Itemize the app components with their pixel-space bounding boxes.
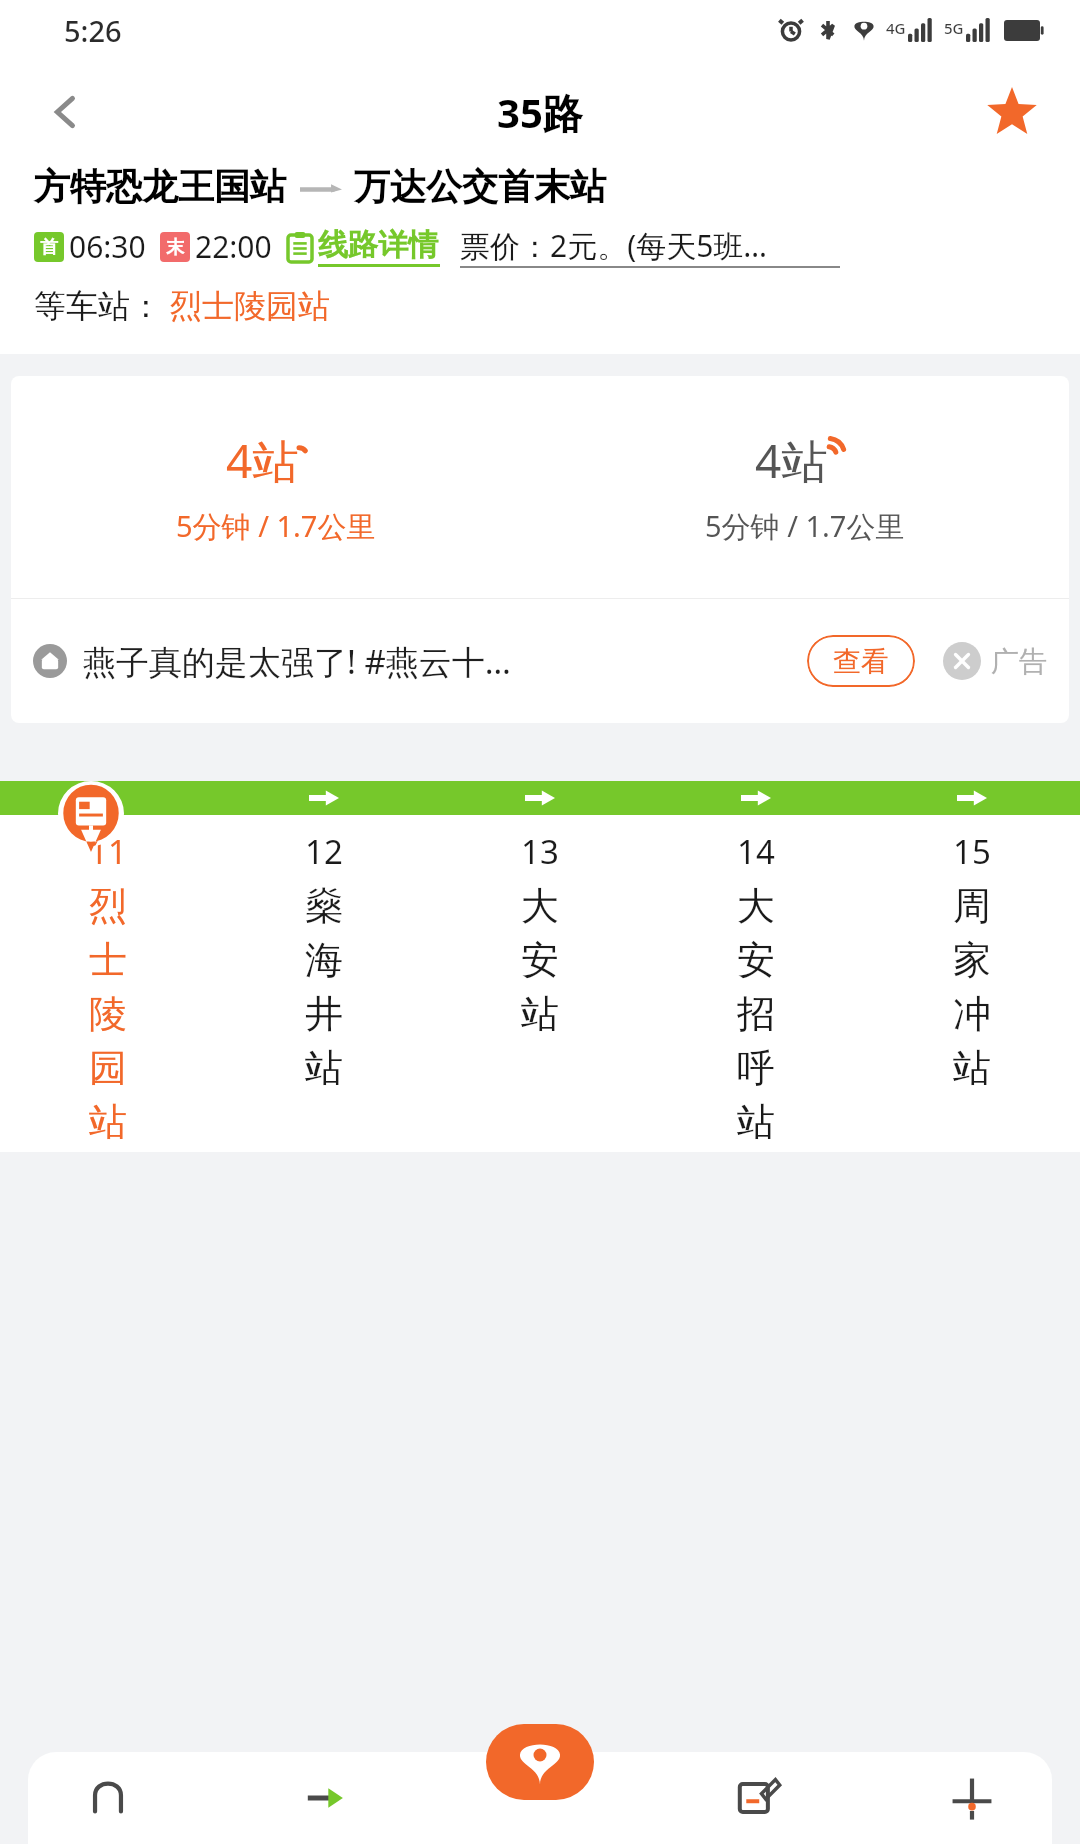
- staticText: 13: [521, 829, 559, 874]
- staticText: 4站: [226, 429, 299, 492]
- staticText: 广告: [991, 644, 1047, 679]
- button[interactable]: Nearby: [486, 1724, 594, 1800]
- button[interactable]: Transfer: [216, 1752, 432, 1844]
- button[interactable]: Favorite: [976, 76, 1048, 148]
- staticText: 井: [305, 990, 343, 1038]
- staticText: 11: [89, 829, 127, 874]
- button[interactable]: 等车站：: [34, 286, 330, 326]
- staticText: 方特恐龙王国站: [34, 164, 286, 209]
- staticText: 士: [89, 936, 127, 984]
- staticText: 首: [40, 236, 58, 259]
- staticText: 万达公交首末站: [354, 164, 606, 209]
- staticText: 大: [737, 882, 775, 930]
- staticText: 招: [737, 990, 775, 1038]
- staticText: 陵: [89, 990, 127, 1038]
- staticText: 12: [305, 829, 343, 874]
- staticText: 安: [737, 936, 775, 984]
- staticText: 家: [953, 936, 991, 984]
- staticText: 4G: [886, 18, 906, 38]
- staticText: 站: [737, 1098, 775, 1146]
- staticText: 4站: [755, 429, 828, 492]
- button[interactable]: 15: [864, 829, 1080, 1098]
- staticText: 5分钟 / 1.7公里: [705, 506, 905, 546]
- staticText: 5:26: [64, 11, 122, 50]
- staticText: 烈士陵园站: [170, 286, 330, 326]
- staticText: 5G: [944, 18, 964, 38]
- staticText: 5分钟 / 1.7公里: [176, 506, 376, 546]
- button[interactable]: Feedback: [648, 1752, 864, 1844]
- staticText: 35路: [497, 85, 583, 140]
- button[interactable]: Home: [0, 1752, 216, 1844]
- button[interactable]: Back: [28, 74, 104, 150]
- staticText: 烈: [89, 882, 127, 930]
- other: Bus position: [58, 781, 124, 855]
- staticText: 安: [521, 936, 559, 984]
- staticText: 站: [953, 1044, 991, 1092]
- button[interactable]: 13: [432, 829, 648, 1044]
- staticText: 站: [521, 990, 559, 1038]
- staticText: 大: [521, 882, 559, 930]
- button[interactable]: 11: [0, 829, 216, 1152]
- staticText: 海: [305, 936, 343, 984]
- button[interactable]: 4站: [11, 376, 540, 598]
- staticText: 周: [953, 882, 991, 930]
- staticText: 站: [305, 1044, 343, 1092]
- staticText: 燕子真的是太强了! #燕云十…: [83, 639, 511, 684]
- button[interactable]: 线路详情: [288, 226, 440, 267]
- staticText: 呼: [737, 1044, 775, 1092]
- staticText: 线路详情: [318, 226, 438, 264]
- button[interactable]: 4站: [540, 376, 1069, 598]
- staticText: 园: [89, 1044, 127, 1092]
- staticText: 14: [737, 829, 775, 874]
- staticText: 站: [89, 1098, 127, 1146]
- button[interactable]: 查看: [807, 635, 915, 687]
- staticText: 等车站：: [34, 286, 162, 326]
- staticText: 末: [166, 236, 184, 259]
- staticText: 冲: [953, 990, 991, 1038]
- staticText: 票价：2元。(每天5班…: [460, 225, 768, 266]
- staticText: 燊: [305, 882, 343, 930]
- button[interactable]: Profile: [864, 1752, 1080, 1844]
- button[interactable]: 14: [648, 829, 864, 1152]
- button[interactable]: 12: [216, 829, 432, 1098]
- button[interactable]: Close ad: [941, 640, 983, 682]
- staticText: 06:30: [69, 226, 146, 267]
- staticText: 15: [953, 829, 991, 874]
- staticText: 22:00: [195, 226, 272, 267]
- staticText: 查看: [833, 644, 889, 679]
